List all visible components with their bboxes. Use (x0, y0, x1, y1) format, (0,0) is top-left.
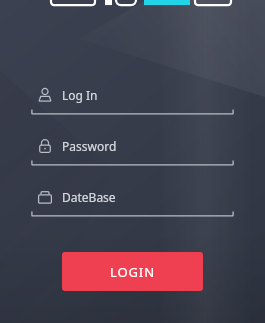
staticText: LOGIN (110, 263, 155, 281)
other: Log In (37, 87, 53, 103)
button[interactable]: Password (31, 135, 234, 166)
button[interactable]: DateBase (31, 186, 234, 217)
staticText: Log In (62, 87, 98, 103)
other: DateBase (37, 189, 53, 205)
button[interactable]: LOGIN (62, 252, 203, 291)
other: Password (37, 138, 53, 154)
staticText: DateBase (62, 189, 116, 205)
button[interactable]: Log In (31, 84, 234, 115)
staticText: Password (62, 138, 117, 154)
